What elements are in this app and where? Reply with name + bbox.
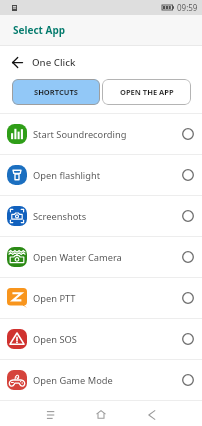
button[interactable]: OPEN THE APP	[102, 79, 191, 105]
staticText: 09:59	[177, 2, 198, 13]
staticText: SHORTCUTS	[34, 87, 78, 97]
button[interactable]: Open flashlight	[0, 155, 202, 195]
button[interactable]: Open PTT	[0, 278, 202, 318]
staticText: One Click	[32, 56, 76, 69]
staticText: Open Water Camera	[33, 251, 182, 264]
button[interactable]: Start Soundrecording	[0, 114, 202, 154]
button[interactable]: Home	[75, 401, 126, 426]
staticText: Select App	[13, 23, 66, 37]
button[interactable]: Screenshots	[0, 196, 202, 236]
staticText: Start Soundrecording	[33, 128, 182, 141]
staticText: Open flashlight	[33, 169, 182, 182]
staticText: Open Game Mode	[33, 374, 182, 387]
button[interactable]: Open Water Camera	[0, 237, 202, 277]
button[interactable]: Recents	[25, 401, 75, 426]
staticText: Screenshots	[33, 210, 182, 223]
staticText: Open PTT	[33, 292, 182, 305]
button[interactable]: Back	[126, 401, 177, 426]
staticText: OPEN THE APP	[120, 87, 174, 97]
button[interactable]: Open SOS	[0, 319, 202, 359]
other: Back	[12, 57, 23, 68]
button[interactable]: Back	[0, 46, 202, 79]
button[interactable]: Open Game Mode	[0, 360, 202, 400]
button[interactable]: SHORTCUTS	[12, 79, 100, 105]
staticText: Open SOS	[33, 333, 182, 346]
